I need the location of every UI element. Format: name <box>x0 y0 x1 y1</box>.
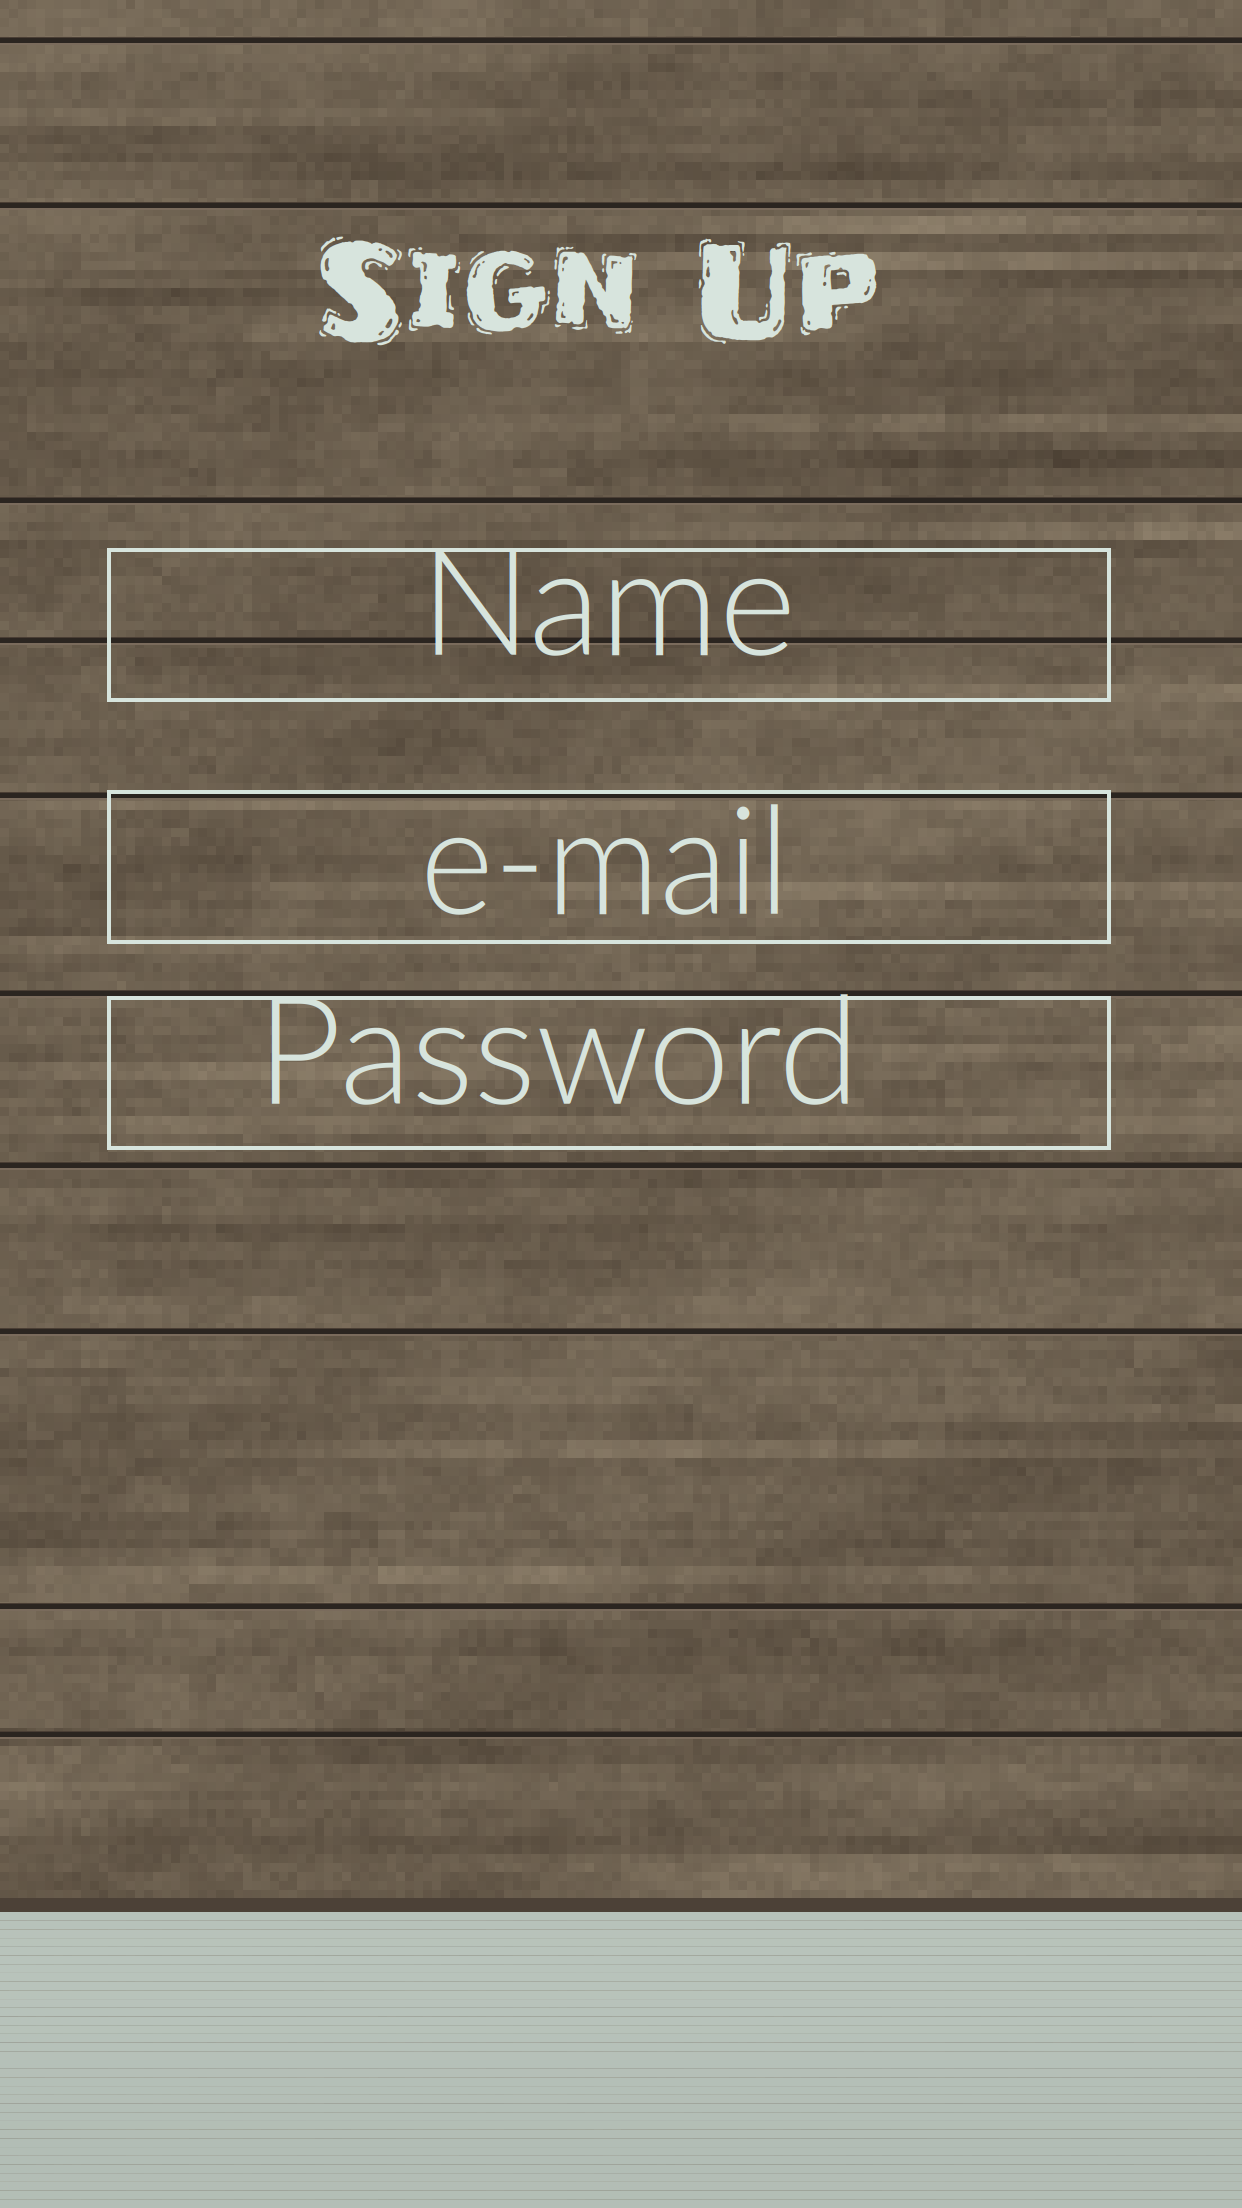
button[interactable]: Name <box>109 550 1109 700</box>
button[interactable]: e-mail <box>109 792 1109 942</box>
staticText: Sign Up <box>255 203 940 379</box>
staticText: Name <box>418 507 798 687</box>
staticText: e-mail <box>409 766 800 946</box>
button[interactable]: Password <box>109 998 1109 1148</box>
button[interactable]: Sign Up <box>0 211 1219 371</box>
staticText: Password <box>253 956 862 1136</box>
